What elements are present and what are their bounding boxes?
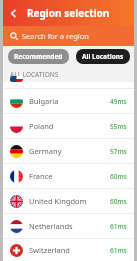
button[interactable]: Switzerland <box>3 239 134 261</box>
staticText: United Kingdom <box>29 196 110 206</box>
staticText: Poland <box>29 121 110 131</box>
staticText: Search for a region <box>22 31 89 41</box>
button[interactable]: Bulgaria <box>3 89 134 113</box>
staticText: Switzerland <box>29 245 110 255</box>
button[interactable]: All Locations <box>76 49 130 64</box>
button[interactable]: Back <box>3 3 23 23</box>
staticText: Germany <box>29 146 110 156</box>
button[interactable]: Search for a region <box>3 26 134 46</box>
staticText: Recommended <box>14 52 63 61</box>
staticText: 61ms <box>110 222 127 231</box>
staticText: France <box>29 171 110 181</box>
staticText: 60ms <box>110 197 127 206</box>
button[interactable]: Netherlands <box>3 214 134 238</box>
button[interactable]: Germany <box>3 139 134 163</box>
staticText: ALL LOCATIONS <box>10 70 59 79</box>
staticText: 55ms <box>110 122 127 131</box>
staticText: 60ms <box>110 172 127 181</box>
button[interactable]: United Kingdom <box>3 189 134 213</box>
button[interactable]: Recommended <box>8 49 69 64</box>
staticText: 57ms <box>110 147 127 156</box>
staticText: 49ms <box>110 97 127 106</box>
staticText: Netherlands <box>29 221 110 231</box>
button[interactable]: France <box>3 164 134 188</box>
staticText: 61ms <box>110 246 127 255</box>
button[interactable]: Poland <box>3 114 134 138</box>
staticText: All Locations <box>82 52 124 61</box>
staticText: Bulgaria <box>29 96 110 106</box>
staticText: Region selection <box>27 6 110 20</box>
